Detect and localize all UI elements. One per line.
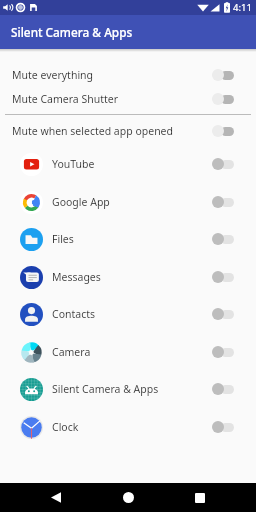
staticText: Mute Camera Shutter [12, 92, 119, 106]
staticText: YouTube [52, 157, 95, 171]
staticText: Contacts [52, 307, 96, 321]
button[interactable]: Contacts [0, 295, 256, 333]
staticText: Files [52, 232, 74, 246]
button[interactable]: Camera [0, 333, 256, 371]
button[interactable]: Recent apps [182, 483, 218, 512]
button[interactable]: Mute when selected app opened [0, 119, 256, 143]
button[interactable]: Messages [0, 258, 256, 296]
button[interactable]: Clock [0, 408, 256, 446]
button[interactable]: Home [110, 483, 146, 512]
button[interactable]: Files [0, 220, 256, 258]
staticText: Google App [52, 195, 110, 209]
staticText: Silent Camera & Apps [52, 382, 159, 396]
staticText: Clock [52, 420, 79, 434]
button[interactable]: Silent Camera & Apps [0, 370, 256, 408]
staticText: 4:11 [233, 1, 252, 14]
staticText: Camera [52, 345, 91, 359]
button[interactable]: YouTube [0, 145, 256, 183]
staticText: Silent Camera & Apps [11, 24, 133, 40]
button[interactable]: Back [38, 483, 74, 512]
button[interactable]: Mute everything [0, 63, 256, 87]
button[interactable]: Mute Camera Shutter [0, 87, 256, 111]
button[interactable]: Google App [0, 183, 256, 221]
staticText: Mute when selected app opened [12, 124, 173, 138]
staticText: Messages [52, 270, 101, 284]
staticText: Mute everything [12, 68, 94, 82]
